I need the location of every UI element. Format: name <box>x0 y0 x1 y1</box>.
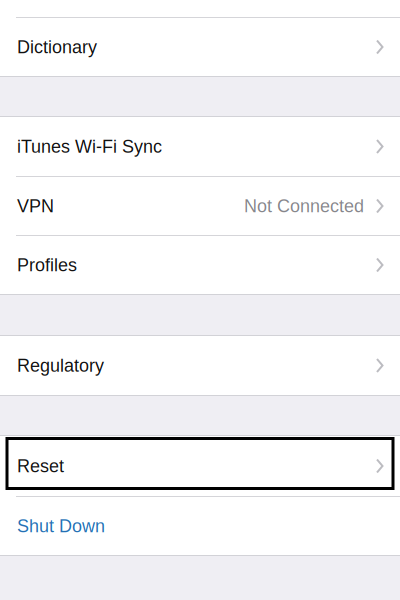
button[interactable]: Reset <box>0 436 400 496</box>
staticText: Not Connected <box>244 196 364 216</box>
staticText: Regulatory <box>17 355 104 375</box>
staticText: Profiles <box>17 255 77 275</box>
staticText: Dictionary <box>17 37 97 57</box>
button[interactable]: Profiles <box>0 236 400 294</box>
button[interactable]: VPN <box>0 177 400 235</box>
staticText: Shut Down <box>17 516 105 536</box>
staticText: iTunes Wi-Fi Sync <box>17 136 162 156</box>
button[interactable]: Shut Down <box>0 497 400 555</box>
button[interactable]: Regulatory <box>0 336 400 395</box>
staticText: VPN <box>17 196 54 216</box>
button[interactable]: Dictionary <box>0 18 400 76</box>
button[interactable]: iTunes Wi-Fi Sync <box>0 117 400 176</box>
staticText: Reset <box>17 456 64 476</box>
